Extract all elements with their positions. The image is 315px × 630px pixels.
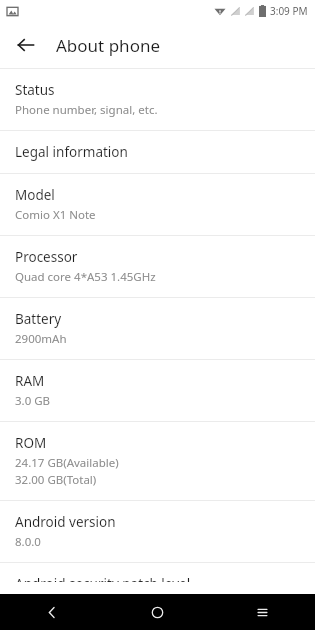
staticText: Battery [15, 310, 62, 328]
button[interactable]: Battery [0, 298, 315, 359]
staticText: 8.0.0 [15, 534, 41, 550]
button[interactable]: Back [0, 594, 105, 630]
staticText: 2900mAh [15, 331, 67, 347]
button[interactable]: Processor [0, 236, 315, 297]
button[interactable]: ROM [0, 422, 315, 500]
staticText: RAM [15, 372, 45, 390]
staticText: 32.00 GB(Total) [15, 472, 97, 488]
staticText: Android version [15, 513, 116, 531]
button[interactable]: Android version [0, 501, 315, 562]
button[interactable]: Home [105, 594, 210, 630]
staticText: Phone number, signal, etc. [15, 102, 158, 118]
staticText: 24.17 GB(Available) [15, 455, 119, 471]
staticText: Android security patch level [15, 575, 191, 582]
staticText: Status [15, 81, 55, 99]
button[interactable]: Back [8, 27, 44, 63]
staticText: Legal information [15, 143, 128, 161]
button[interactable]: Legal information [0, 131, 315, 173]
staticText: ROM [15, 434, 47, 452]
button[interactable]: RAM [0, 360, 315, 421]
staticText: Model [15, 186, 55, 204]
button[interactable]: Status [0, 69, 315, 130]
button[interactable]: Model [0, 174, 315, 235]
staticText: Processor [15, 248, 78, 266]
button[interactable]: Android security patch level [0, 563, 315, 594]
button[interactable]: Recent apps [210, 594, 315, 630]
staticText: 3.0 GB [15, 393, 51, 409]
staticText: About phone [56, 34, 161, 57]
staticText: 3:09 PM [270, 4, 308, 18]
staticText: Comio X1 Note [15, 207, 96, 223]
staticText: Quad core 4*A53 1.45GHz [15, 269, 156, 285]
